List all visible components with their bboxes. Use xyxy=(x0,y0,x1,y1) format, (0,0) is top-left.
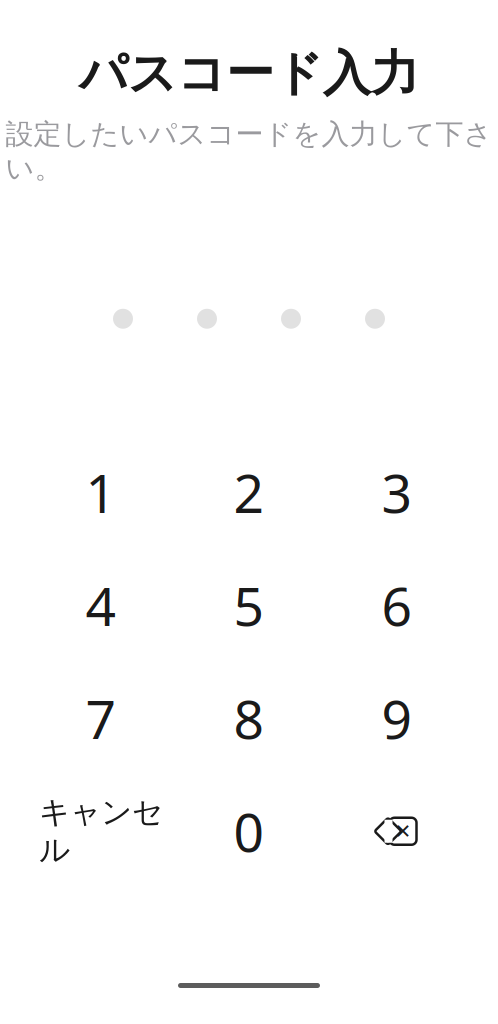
button[interactable]: 5 xyxy=(175,549,323,662)
staticText: 8 xyxy=(233,683,264,754)
staticText: 4 xyxy=(85,570,116,641)
button[interactable]: 削除 xyxy=(323,775,471,888)
staticText: 2 xyxy=(233,457,264,528)
staticText: 9 xyxy=(381,683,412,754)
staticText: 7 xyxy=(85,683,116,754)
button[interactable]: 7 xyxy=(27,662,175,775)
staticText: 1 xyxy=(85,457,116,528)
staticText: キャンセル xyxy=(39,794,163,869)
staticText: パスコード入力 xyxy=(79,44,419,103)
button[interactable]: 0 xyxy=(175,775,323,888)
staticText: 設定したいパスコードを入力して下さい。 xyxy=(5,117,492,186)
button[interactable]: 2 xyxy=(175,436,323,549)
staticText: 6 xyxy=(381,570,412,641)
staticText: 0 xyxy=(233,796,264,867)
button[interactable]: 3 xyxy=(323,436,471,549)
button[interactable]: 9 xyxy=(323,662,471,775)
button[interactable]: 6 xyxy=(323,549,471,662)
button[interactable]: キャンセル xyxy=(27,775,175,888)
button[interactable]: 8 xyxy=(175,662,323,775)
button[interactable]: 1 xyxy=(27,436,175,549)
staticText: 5 xyxy=(233,570,264,641)
staticText: ✕ xyxy=(394,820,411,843)
staticText: 3 xyxy=(381,457,412,528)
button[interactable]: 4 xyxy=(27,549,175,662)
